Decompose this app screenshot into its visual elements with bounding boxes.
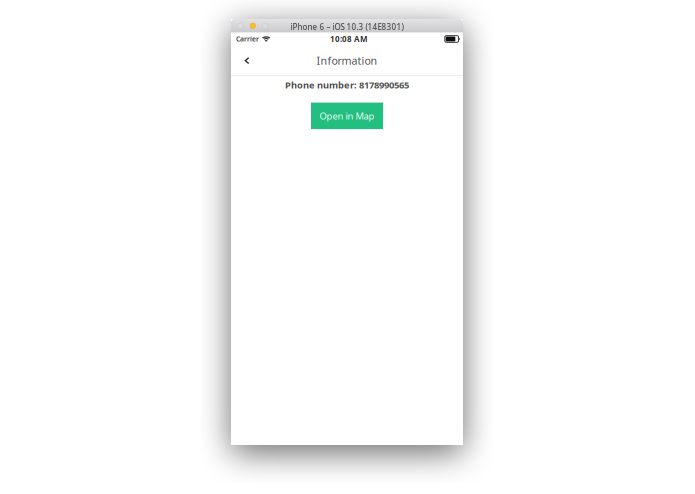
button[interactable]: Zoom	[260, 21, 270, 30]
staticText: Open in Map	[319, 110, 374, 122]
button[interactable]: Back	[237, 45, 257, 76]
staticText: 10:08 AM	[330, 34, 368, 44]
button[interactable]: Close	[236, 21, 245, 30]
staticText: iPhone 6 – iOS 10.3 (14E8301)	[290, 22, 403, 32]
staticText: Information	[316, 53, 377, 68]
staticText: Carrier	[236, 35, 259, 43]
button[interactable]: Open in Map	[311, 103, 383, 129]
button[interactable]: Minimise	[248, 21, 257, 30]
staticText: Phone number: 8178990565	[285, 79, 409, 91]
